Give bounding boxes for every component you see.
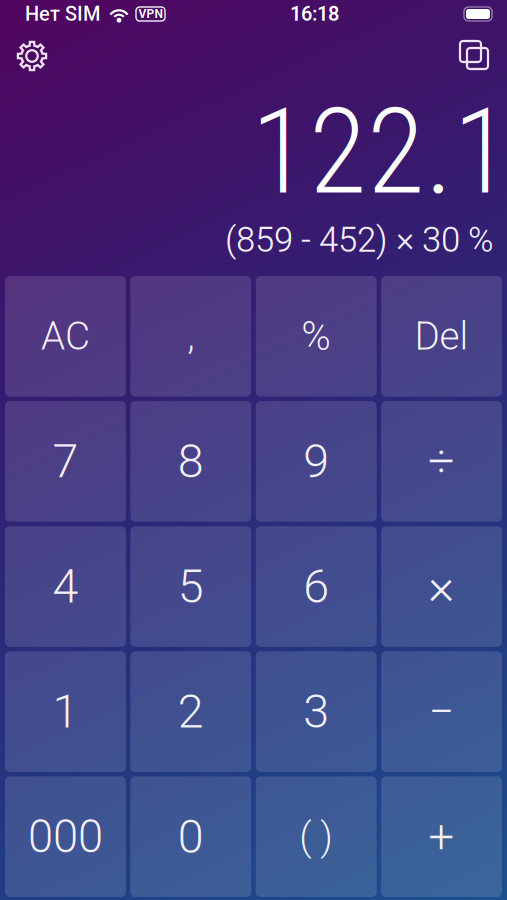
staticText: (859 - 452) × 30 % [225, 220, 494, 260]
button[interactable]: ÷ [381, 401, 502, 522]
staticText: 6 [303, 559, 329, 614]
staticText: + [429, 810, 455, 863]
staticText: , [187, 314, 194, 359]
button[interactable]: 3 [256, 651, 377, 772]
button[interactable]: % [256, 276, 377, 397]
button[interactable]: Del [381, 276, 502, 397]
staticText: 0 [178, 809, 204, 864]
staticText: % [301, 313, 331, 360]
button[interactable]: 4 [5, 526, 126, 647]
button[interactable]: AC [5, 276, 126, 397]
staticText: AC [41, 314, 90, 359]
button[interactable]: , [130, 276, 251, 397]
staticText: − [429, 685, 455, 738]
button[interactable]: 8 [130, 401, 251, 522]
button[interactable]: 6 [256, 526, 377, 647]
button[interactable]: × [381, 526, 502, 647]
staticText: 4 [52, 559, 78, 614]
button[interactable]: 7 [5, 401, 126, 522]
button[interactable]: 1 [5, 651, 126, 772]
staticText: Del [415, 314, 469, 359]
staticText: ( ) [299, 814, 333, 859]
button[interactable]: 000 [5, 776, 126, 897]
button[interactable]: 9 [256, 401, 377, 522]
button[interactable]: ( ) [256, 776, 377, 897]
button[interactable]: 5 [130, 526, 251, 647]
staticText: 5 [178, 559, 204, 614]
staticText: VPN [138, 7, 162, 21]
button[interactable]: − [381, 651, 502, 772]
button[interactable]: Settings [0, 28, 64, 84]
staticText: 2 [178, 684, 204, 739]
button[interactable]: 0 [130, 776, 251, 897]
staticText: 122.1 [251, 82, 507, 222]
staticText: 000 [28, 810, 103, 863]
staticText: 1 [52, 684, 78, 739]
staticText: 8 [178, 434, 204, 489]
button[interactable]: 2 [130, 651, 251, 772]
staticText: ÷ [428, 434, 455, 489]
button[interactable]: + [381, 776, 502, 897]
staticText: 3 [303, 684, 329, 739]
staticText: × [428, 557, 455, 616]
button[interactable]: History [443, 28, 507, 84]
staticText: 16:18 [290, 2, 339, 26]
staticText: 9 [303, 434, 329, 489]
staticText: Нет SIM [25, 2, 100, 26]
staticText: 7 [52, 434, 78, 489]
